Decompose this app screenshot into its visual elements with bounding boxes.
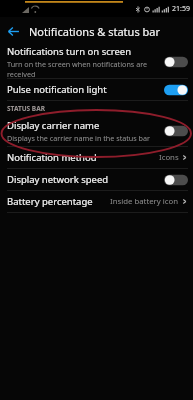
staticText: Inside battery icon [110,196,179,207]
button[interactable]: Notification method [0,147,193,168]
button[interactable]: Switch on [164,83,188,97]
staticText: Turn on the screen when notifications ar… [7,59,161,78]
button[interactable]: Switch off [164,124,188,138]
button[interactable]: Switch off [164,55,188,69]
staticText: Notifications & status bar [29,24,160,39]
staticText: Displays the carrier name in the status … [7,133,151,143]
button[interactable]: Inside battery icon [110,196,188,207]
button[interactable]: Pulse notification light [0,79,193,100]
button[interactable]: Display network speed [0,169,193,190]
button[interactable]: Display carrier name [0,116,193,146]
staticText: Display network speed [7,173,109,186]
staticText: Icons [159,152,179,163]
staticText: STATUS BAR [7,104,45,113]
button[interactable]: Switch off [164,173,188,187]
staticText: Notifications turn on screen [7,45,132,58]
button[interactable]: Back [0,18,26,44]
staticText: Notification method [7,151,97,164]
staticText: Battery percentage [7,195,93,208]
staticText: 21:59 [172,4,190,14]
button[interactable]: Battery percentage [0,191,193,212]
staticText: Display carrier name [7,119,100,132]
staticText: Pulse notification light [7,83,107,96]
button[interactable]: Notifications turn on screen [0,45,193,78]
button[interactable]: Icons [159,152,188,163]
